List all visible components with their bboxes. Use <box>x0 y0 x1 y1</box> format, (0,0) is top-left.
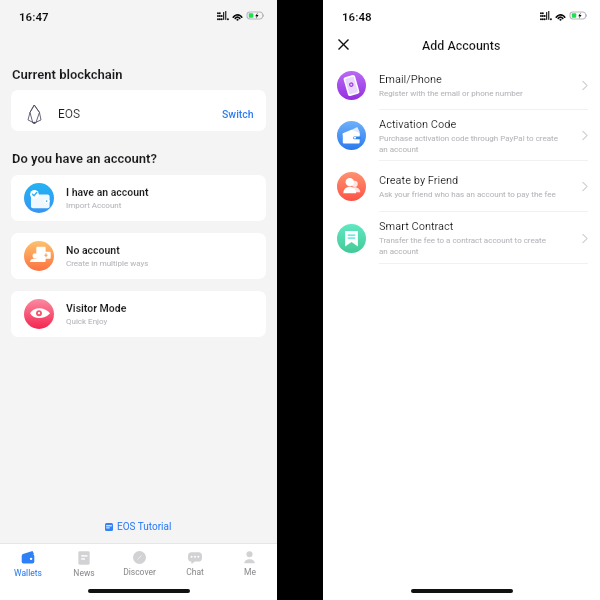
staticText: 16:47 <box>19 10 49 23</box>
staticText: Purchase activation code through PayPal … <box>379 134 558 154</box>
staticText: Ask your friend who has an account to pa… <box>379 190 556 199</box>
staticText: Create by Friend <box>379 174 459 187</box>
button[interactable]: Discover <box>112 544 167 584</box>
staticText: Wallets <box>14 568 42 578</box>
button[interactable]: Create by Friend <box>323 161 600 212</box>
staticText: Register with the email or phone number <box>379 89 523 98</box>
button[interactable]: Wallets <box>0 544 56 584</box>
staticText: I have an account <box>66 186 149 198</box>
staticText: Transfer the fee to a contract account t… <box>379 236 546 256</box>
staticText: Add Accounts <box>422 38 501 53</box>
button[interactable]: EOS Tutorial <box>0 511 277 543</box>
staticText: Quick Enjoy <box>66 317 108 326</box>
staticText: Do you have an account? <box>12 151 157 166</box>
button[interactable]: Activation Code <box>323 110 600 161</box>
staticText: Import Account <box>66 201 122 210</box>
staticText: Me <box>244 567 256 577</box>
button[interactable]: Close <box>331 33 355 57</box>
button[interactable]: Me <box>222 544 277 584</box>
staticText: 16:48 <box>342 10 372 23</box>
button[interactable]: Smart Contract <box>323 212 600 264</box>
staticText: EOS <box>58 107 81 121</box>
staticText: No account <box>66 244 120 256</box>
button[interactable]: Email/Phone <box>323 60 600 110</box>
staticText: Chat <box>186 567 204 577</box>
button[interactable]: No account <box>11 233 266 279</box>
staticText: Current blockchain <box>12 67 123 82</box>
staticText: EOS Tutorial <box>117 521 172 533</box>
staticText: Switch <box>222 108 254 120</box>
staticText: Discover <box>123 567 156 577</box>
staticText: Create in multiple ways <box>66 259 149 268</box>
button[interactable]: Chat <box>167 544 222 584</box>
button[interactable]: I have an account <box>11 175 266 221</box>
staticText: News <box>73 568 95 578</box>
staticText: Email/Phone <box>379 73 442 86</box>
button[interactable]: News <box>56 544 112 584</box>
staticText: Smart Contract <box>379 220 454 233</box>
button[interactable]: Visitor Mode <box>11 291 266 337</box>
staticText: Visitor Mode <box>66 302 127 314</box>
button[interactable]: EOS <box>11 90 266 131</box>
staticText: Activation Code <box>379 118 457 131</box>
